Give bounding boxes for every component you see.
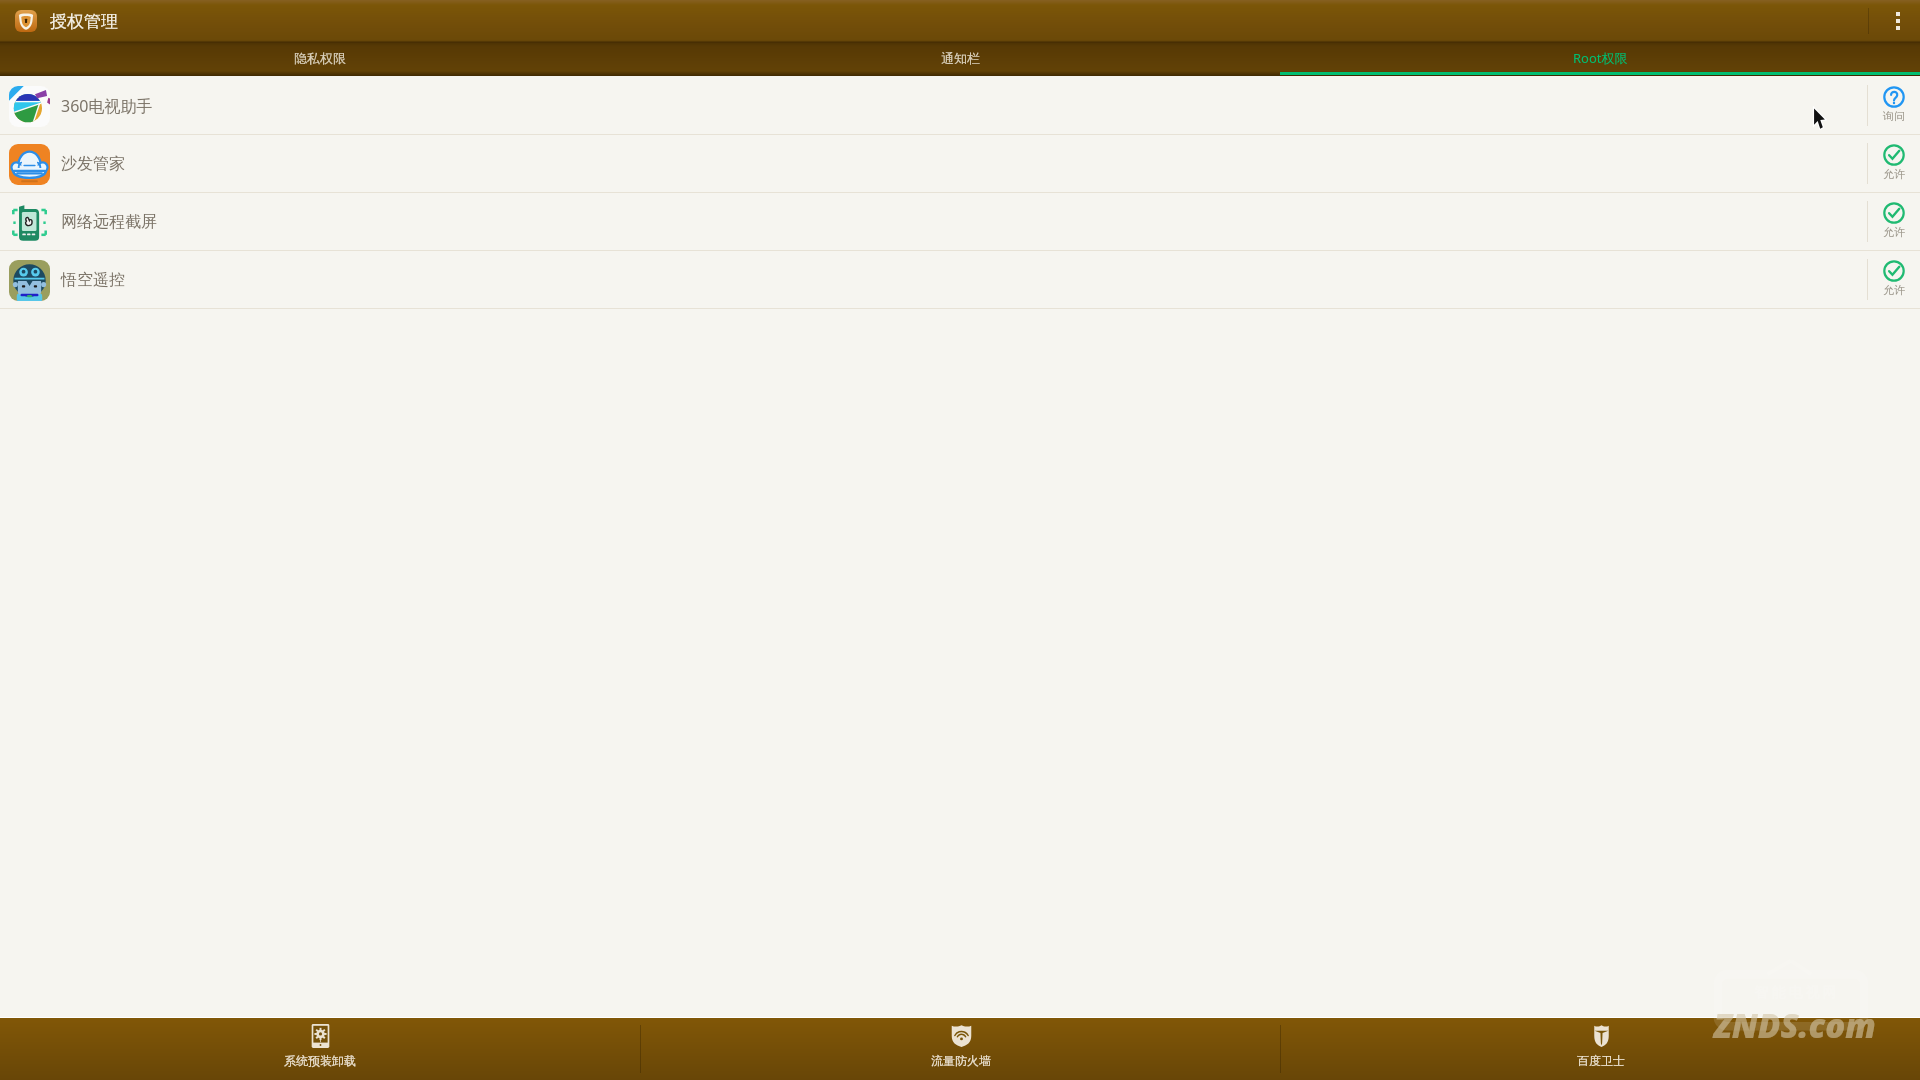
- button[interactable]: 允许: [1868, 135, 1920, 192]
- button[interactable]: 通知栏: [640, 42, 1280, 76]
- staticText: 允许: [1883, 225, 1905, 239]
- staticText: 允许: [1883, 167, 1905, 181]
- staticText: 沙发管家: [61, 154, 125, 174]
- staticText: 系统预装卸载: [284, 1053, 356, 1068]
- button[interactable]: 流量防火墙: [641, 1018, 1280, 1080]
- staticText: 隐私权限: [294, 50, 346, 66]
- button[interactable]: 悟空遥控: [0, 251, 1920, 308]
- staticText: 授权管理: [50, 11, 118, 32]
- staticText: 询问: [1883, 109, 1905, 123]
- button[interactable]: 网络远程截屏: [0, 193, 1920, 250]
- staticText: 悟空遥控: [61, 270, 125, 290]
- button[interactable]: 沙发管家: [0, 135, 1920, 192]
- staticText: Root权限: [1573, 49, 1628, 67]
- button[interactable]: 系统预装卸载: [0, 1018, 640, 1080]
- button[interactable]: 允许: [1868, 251, 1920, 308]
- staticText: 通知栏: [941, 50, 980, 66]
- button[interactable]: More options: [1876, 0, 1920, 42]
- button[interactable]: 允许: [1868, 193, 1920, 250]
- staticText: ZNDS.com: [1714, 1003, 1876, 1048]
- button[interactable]: 隐私权限: [0, 42, 640, 76]
- staticText: 360电视助手: [61, 95, 153, 117]
- staticText: 网络远程截屏: [61, 212, 157, 232]
- staticText: 允许: [1883, 283, 1905, 297]
- button[interactable]: 百度卫士: [1281, 1018, 1920, 1080]
- button[interactable]: Root权限: [1280, 42, 1920, 76]
- staticText: 百度卫士: [1577, 1053, 1625, 1068]
- staticText: 流量防火墙: [931, 1053, 991, 1068]
- button[interactable]: 360电视助手: [0, 77, 1920, 134]
- button[interactable]: 询问: [1868, 77, 1920, 134]
